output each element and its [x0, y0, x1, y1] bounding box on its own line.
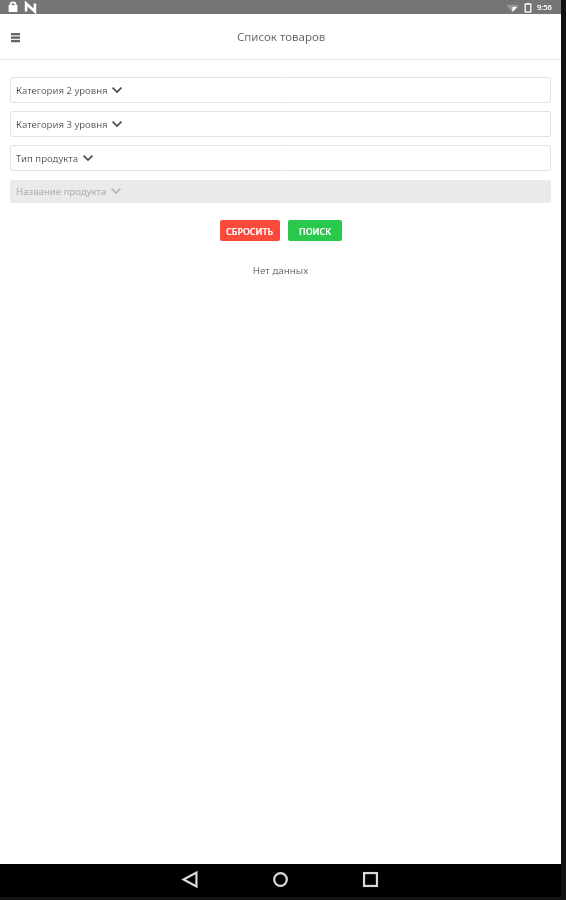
button[interactable]: Home — [235, 864, 325, 894]
staticText: Название продукта — [16, 185, 107, 198]
button[interactable]: Back — [145, 864, 235, 894]
button[interactable]: Категория 2 уровня — [10, 77, 551, 103]
staticText: Тип продукта — [16, 152, 79, 165]
button[interactable]: Название продукта — [10, 180, 551, 203]
button[interactable]: Recents — [325, 864, 415, 894]
staticText: Список товаров — [237, 29, 326, 45]
button[interactable]: Menu — [4, 26, 26, 48]
staticText: 9:56 — [537, 2, 552, 12]
staticText: Категория 3 уровня — [16, 118, 108, 131]
button[interactable]: Тип продукта — [10, 145, 551, 171]
staticText: Нет данных — [10, 264, 551, 277]
staticText: ПОИСК — [299, 225, 332, 237]
button[interactable]: ПОИСК — [288, 220, 342, 241]
staticText: СБРОСИТЬ — [226, 225, 274, 237]
button[interactable]: СБРОСИТЬ — [220, 220, 280, 241]
button[interactable]: Категория 3 уровня — [10, 111, 551, 137]
staticText: Категория 2 уровня — [16, 84, 108, 97]
